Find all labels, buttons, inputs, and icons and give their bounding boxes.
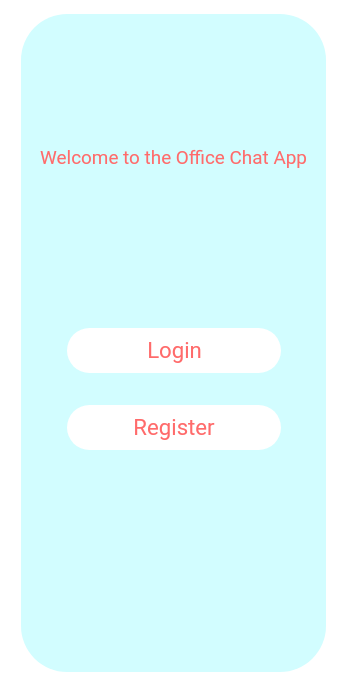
staticText: Login: [147, 337, 202, 363]
button[interactable]: Login: [67, 328, 281, 373]
staticText: Welcome to the Office Chat App: [40, 146, 307, 168]
button[interactable]: Register: [67, 405, 281, 450]
staticText: Register: [133, 414, 215, 440]
